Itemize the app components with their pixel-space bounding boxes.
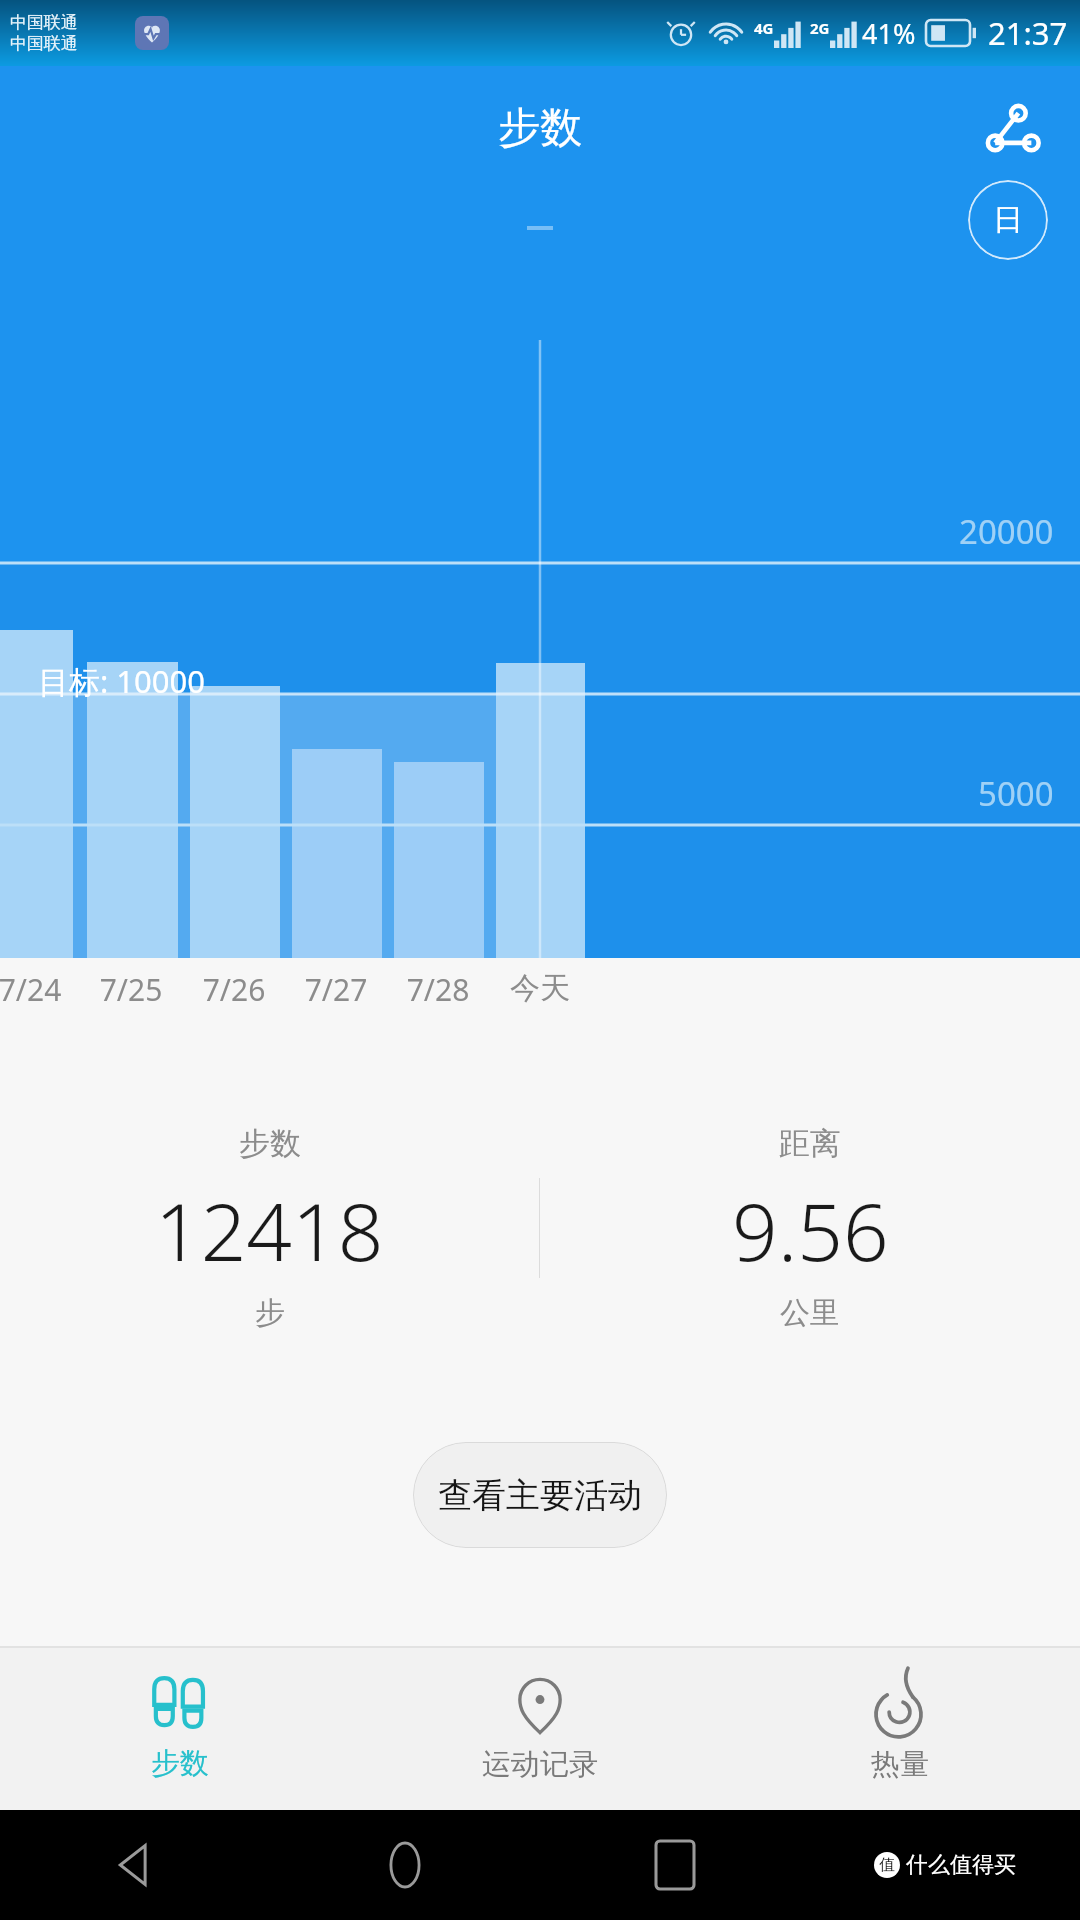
staticText: 步 xyxy=(255,1294,285,1332)
staticText: 41% xyxy=(862,15,916,52)
staticText: 20000 xyxy=(959,509,1054,554)
button[interactable]: 主页 xyxy=(383,1843,427,1887)
staticText: 步数 xyxy=(239,1124,301,1163)
button[interactable]: 查看主要活动 xyxy=(413,1442,667,1548)
staticText: 12418 xyxy=(155,1175,384,1284)
staticText: 7/24 xyxy=(0,969,80,1010)
staticText: 热量 xyxy=(871,1746,929,1783)
staticText: 运动记录 xyxy=(482,1746,598,1783)
staticText: 距离 xyxy=(779,1124,841,1163)
staticText: 5000 xyxy=(978,771,1054,816)
staticText: 中国联通 xyxy=(10,12,78,33)
button[interactable]: 分享 xyxy=(970,88,1056,174)
button[interactable]: 日 xyxy=(968,180,1048,260)
staticText: 目标: 10000 xyxy=(38,660,206,702)
staticText: 中国联通 xyxy=(10,33,78,54)
button[interactable]: 返回 xyxy=(112,1842,158,1888)
button[interactable]: 热量 xyxy=(720,1648,1080,1810)
staticText: 值 xyxy=(879,1855,895,1875)
staticText: 日 xyxy=(993,201,1023,239)
staticText: 7/25 xyxy=(81,969,181,1010)
staticText: 4G xyxy=(754,18,774,38)
button[interactable]: 步数 xyxy=(0,1648,360,1810)
button[interactable]: 最近任务 xyxy=(656,1841,694,1889)
staticText: 今天 xyxy=(490,969,590,1007)
staticText: 什么值得买 xyxy=(906,1851,1016,1879)
staticText: 步数 xyxy=(151,1745,209,1782)
staticText: 7/27 xyxy=(286,969,386,1010)
staticText: 2G xyxy=(810,18,830,38)
staticText: 公里 xyxy=(780,1294,840,1332)
staticText: 21:37 xyxy=(988,12,1068,54)
staticText: 查看主要活动 xyxy=(438,1474,642,1517)
staticText: 9.56 xyxy=(732,1175,889,1284)
staticText: 步数 xyxy=(498,102,582,155)
staticText: 7/26 xyxy=(184,969,284,1010)
button[interactable]: 运动记录 xyxy=(360,1648,720,1810)
staticText: 7/28 xyxy=(388,969,488,1010)
